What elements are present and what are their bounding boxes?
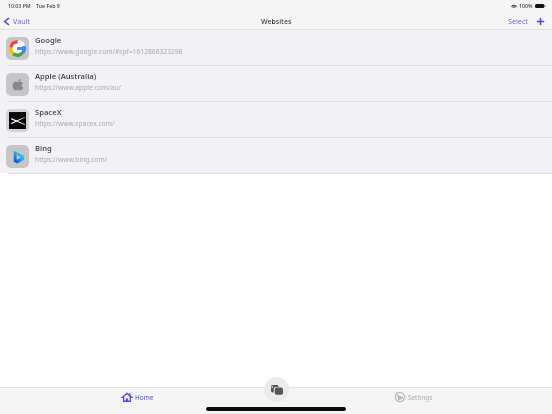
staticText: https://www.google.com/#spf=161286832329… — [35, 47, 183, 56]
staticText: https://www.spacex.com/ — [35, 119, 115, 128]
staticText: Websites — [261, 17, 292, 26]
staticText: Settings — [408, 393, 433, 402]
button[interactable]: Google — [0, 30, 552, 66]
staticText: 10:03 PM — [8, 2, 31, 9]
button[interactable]: Apple (Australia) — [0, 66, 552, 102]
button[interactable]: Select — [508, 16, 528, 26]
button[interactable]: Vault — [4, 16, 31, 26]
button[interactable]: Add — [536, 17, 545, 26]
staticText: Google — [35, 35, 62, 45]
staticText: Vault — [13, 16, 31, 26]
staticText: Home — [135, 393, 154, 402]
staticText: Bing — [35, 143, 52, 153]
staticText: Tue Feb 9 — [36, 2, 60, 9]
button[interactable]: Copy — [264, 377, 289, 402]
button[interactable]: SpaceX — [0, 102, 552, 138]
button[interactable]: Home — [122, 392, 154, 402]
button[interactable]: Bing — [0, 138, 552, 174]
staticText: Select — [508, 16, 528, 26]
staticText: 100% — [519, 2, 533, 9]
button[interactable]: Settings — [395, 392, 433, 402]
staticText: SpaceX — [35, 107, 62, 117]
staticText: https://www.apple.com/au/ — [35, 83, 121, 92]
staticText: https://www.bing.com/ — [35, 155, 108, 164]
staticText: Apple (Australia) — [35, 71, 97, 81]
